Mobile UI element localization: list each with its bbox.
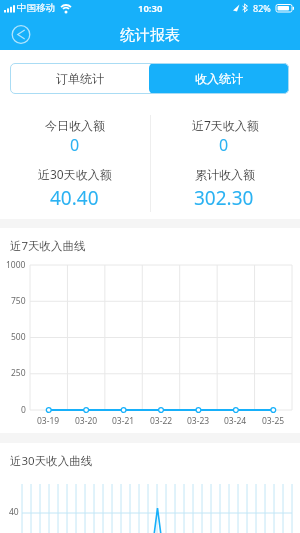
staticText: 03-20 [75, 415, 98, 427]
staticText: 0 [219, 134, 229, 156]
staticText: 302.30 [194, 185, 254, 211]
staticText: 500 [11, 331, 26, 343]
staticText: 中国移动 [17, 2, 55, 14]
staticText: 近7天收入额 [192, 117, 259, 133]
staticText: 10:30 [138, 2, 163, 15]
staticText: 03-21 [112, 415, 135, 427]
staticText: 03-25 [262, 415, 285, 427]
button[interactable] [4, 22, 38, 48]
staticText: 03-22 [150, 415, 173, 427]
staticText: 82% [253, 2, 271, 14]
staticText: 1000 [6, 259, 26, 271]
staticText: 03-23 [187, 415, 210, 427]
staticText: 收入统计 [195, 71, 243, 86]
button[interactable]: 收入统计 [149, 63, 289, 94]
staticText: 统计报表 [120, 26, 180, 45]
staticText: 累计收入额 [195, 167, 255, 182]
staticText: 250 [11, 367, 26, 379]
staticText: 750 [11, 295, 26, 307]
staticText: 今日收入额 [45, 118, 105, 133]
staticText: 0 [21, 404, 26, 416]
staticText: 近7天收入曲线 [10, 238, 86, 254]
staticText: 近30天收入曲线 [10, 453, 93, 469]
staticText: 03-19 [37, 415, 60, 427]
button[interactable]: 订单统计 [10, 63, 149, 94]
staticText: 40 [9, 506, 19, 518]
staticText: 40.40 [50, 185, 99, 211]
staticText: 近30天收入额 [38, 166, 112, 182]
staticText: 03-24 [224, 415, 247, 427]
staticText: 0 [70, 134, 80, 156]
staticText: 订单统计 [56, 71, 104, 86]
